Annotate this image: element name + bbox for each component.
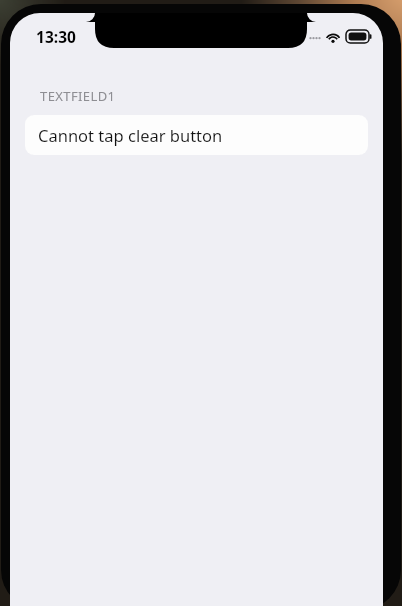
button[interactable]: Cannot tap clear button [25,115,368,155]
staticText: Cannot tap clear button [38,124,223,146]
staticText: 13:30 [36,26,76,47]
staticText: TEXTFIELD1 [40,87,116,105]
